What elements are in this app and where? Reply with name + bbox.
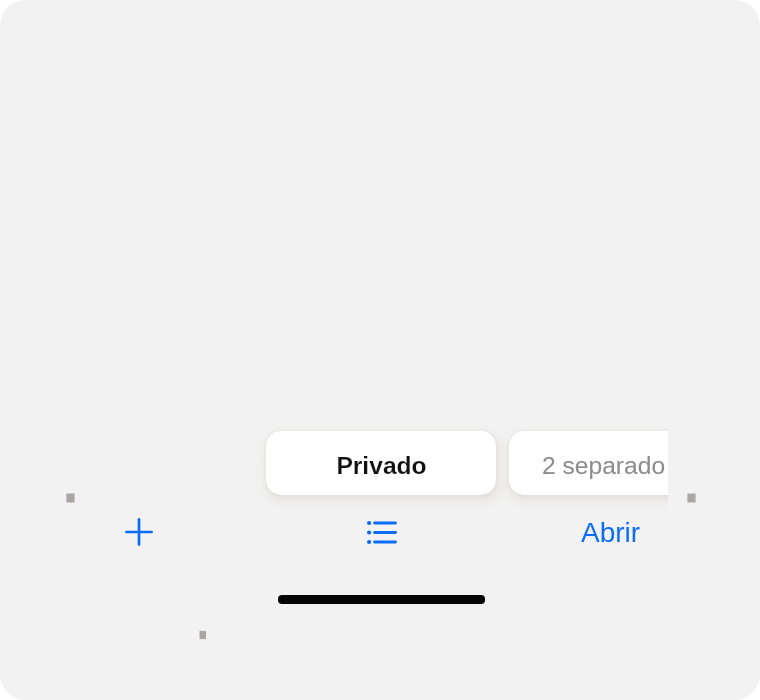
button[interactable]: Add [108, 506, 170, 558]
staticText: Abrir [581, 517, 641, 548]
button[interactable]: Privado [266, 431, 496, 495]
button[interactable]: 2 separado que [509, 431, 668, 495]
staticText: 2 separado que [542, 452, 668, 479]
button[interactable]: Abrir [564, 506, 658, 558]
staticText: Privado [336, 452, 427, 479]
button[interactable]: List view [350, 506, 414, 558]
